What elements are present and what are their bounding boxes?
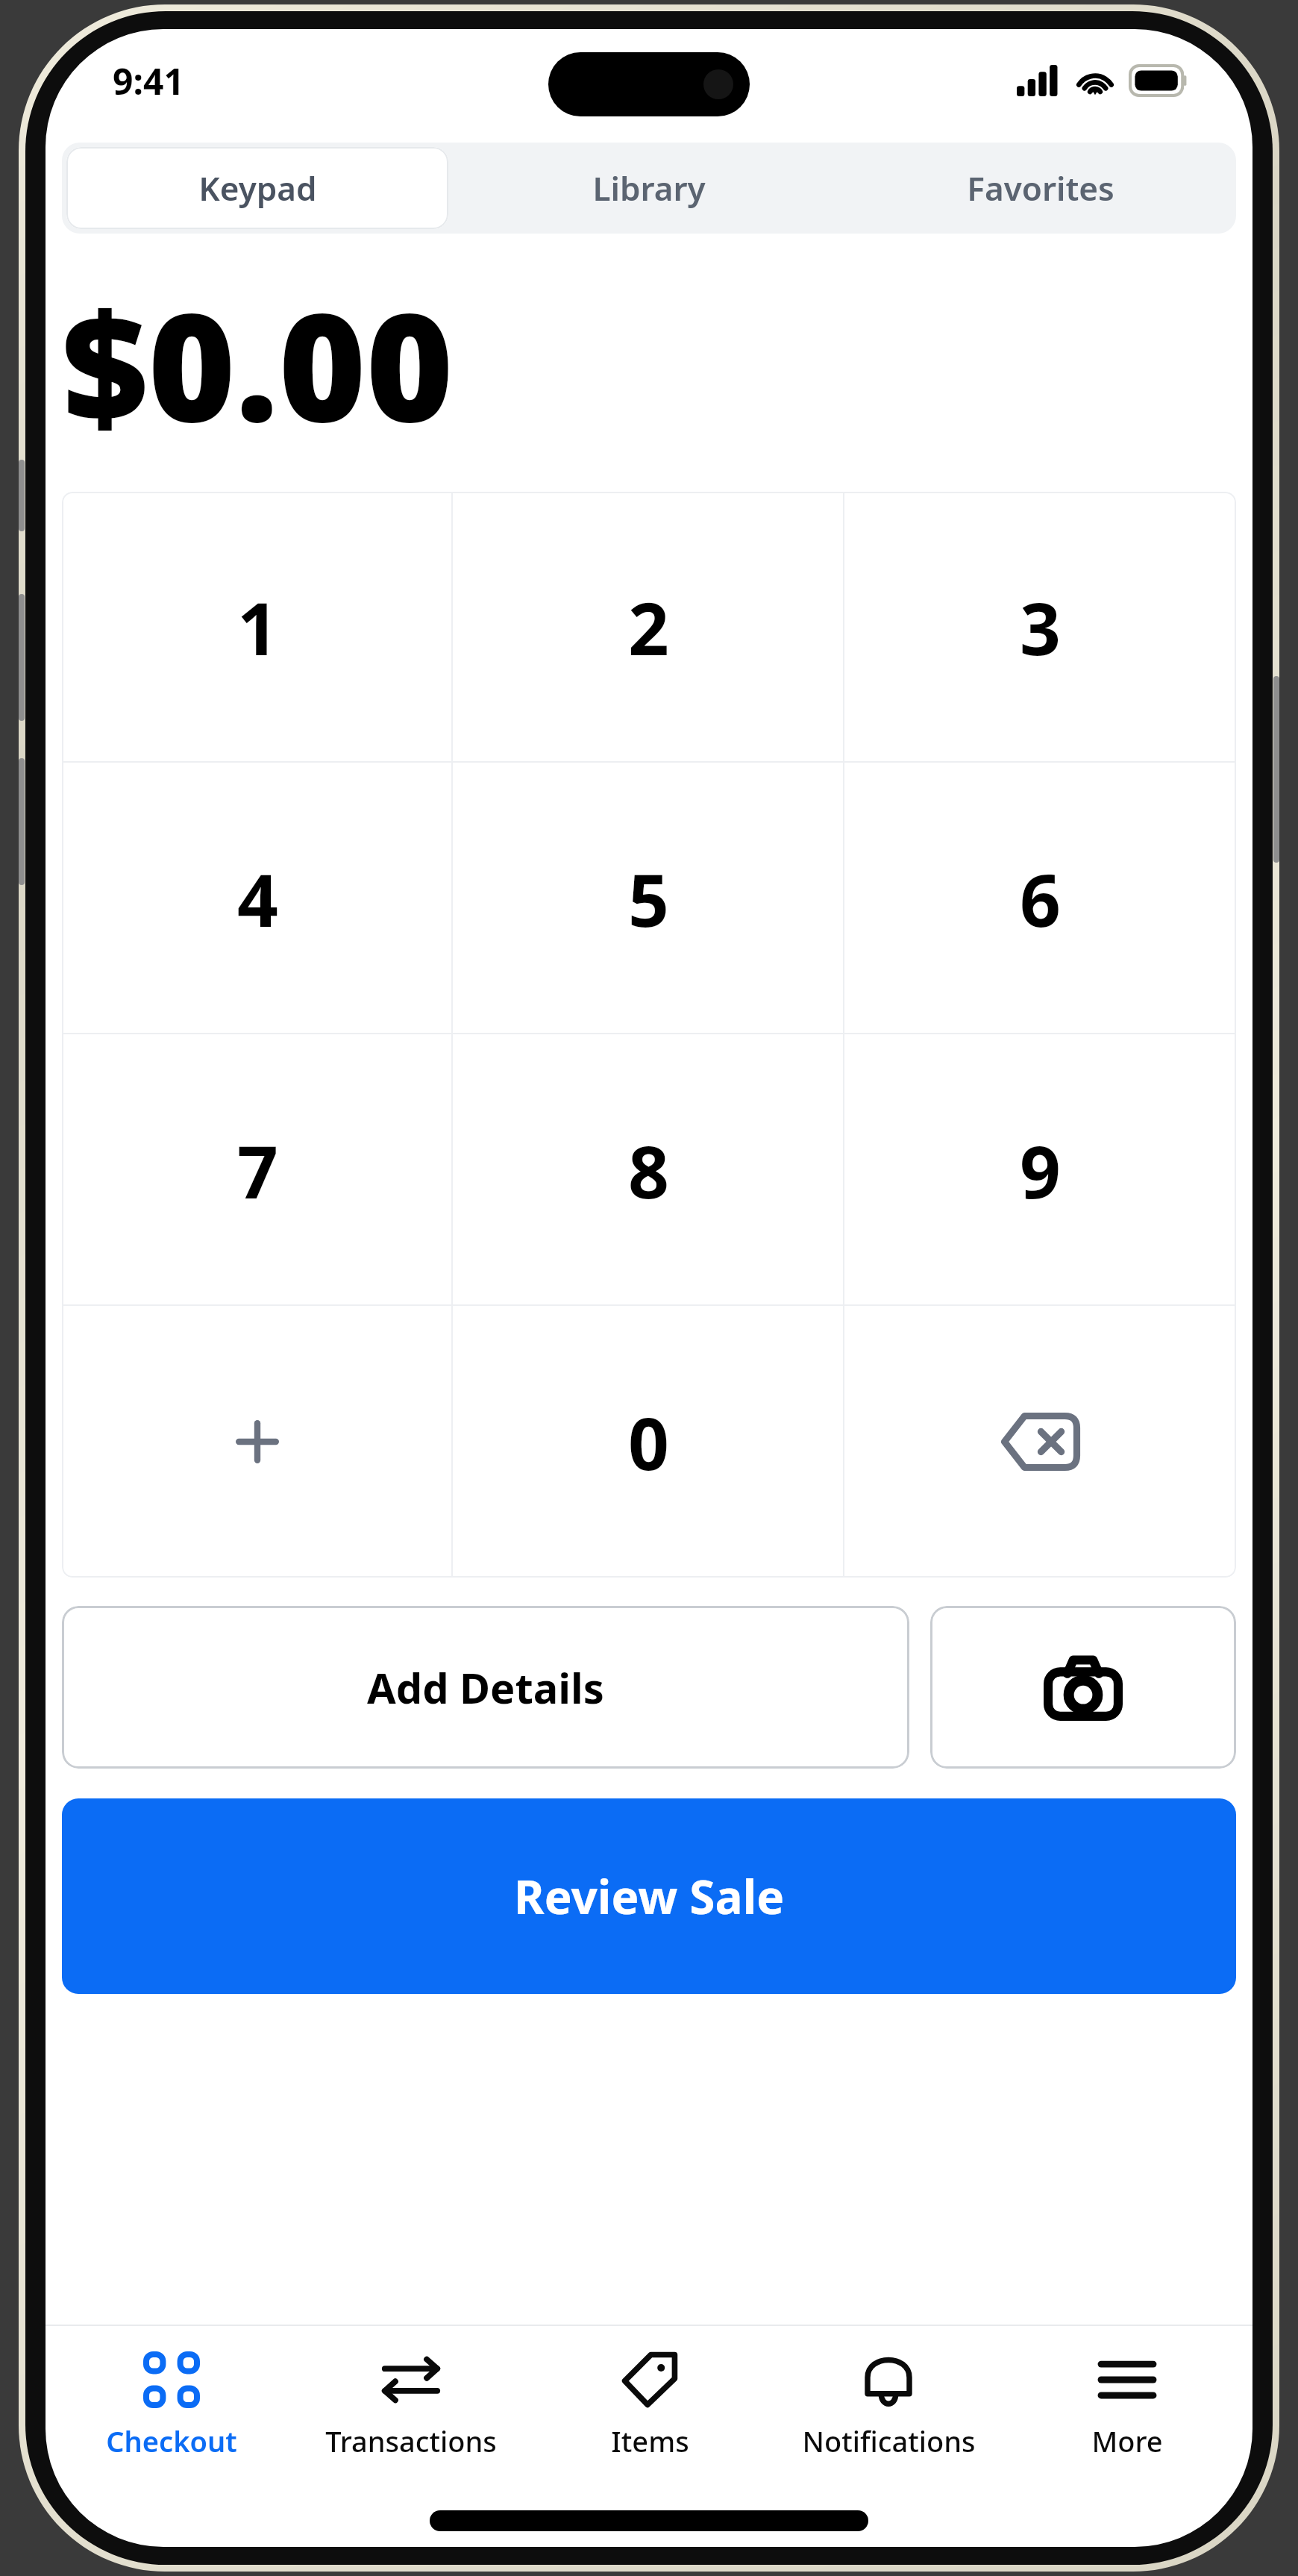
- button[interactable]: 0: [453, 1306, 844, 1578]
- button[interactable]: Library: [453, 143, 844, 234]
- button[interactable]: Favorites: [844, 143, 1236, 234]
- button[interactable]: Backspace: [844, 1306, 1236, 1578]
- staticText: Items: [611, 2422, 689, 2460]
- staticText: Library: [592, 166, 706, 210]
- button[interactable]: 3: [844, 492, 1236, 763]
- button[interactable]: Items: [530, 2326, 769, 2483]
- staticText: 9: [1020, 1122, 1061, 1219]
- staticText: 8: [628, 1122, 669, 1219]
- button[interactable]: Add: [62, 1306, 453, 1578]
- button[interactable]: Checkout: [51, 2326, 291, 2483]
- button[interactable]: Add Details: [62, 1606, 909, 1769]
- button[interactable]: Transactions: [291, 2326, 530, 2483]
- button[interactable]: Keypad: [66, 147, 448, 229]
- staticText: $0.00: [62, 262, 454, 465]
- button[interactable]: 7: [62, 1034, 453, 1306]
- staticText: 3: [1020, 578, 1061, 676]
- staticText: More: [1091, 2422, 1163, 2460]
- button[interactable]: 6: [844, 763, 1236, 1034]
- button[interactable]: 8: [453, 1034, 844, 1306]
- button[interactable]: Review Sale: [62, 1798, 1236, 1994]
- button[interactable]: 2: [453, 492, 844, 763]
- staticText: 1: [237, 578, 278, 676]
- button[interactable]: Notifications: [769, 2326, 1008, 2483]
- staticText: 2: [628, 578, 669, 676]
- button[interactable]: 9: [844, 1034, 1236, 1306]
- staticText: 4: [237, 850, 278, 948]
- staticText: Keypad: [198, 166, 317, 210]
- staticText: Favorites: [967, 166, 1114, 210]
- button[interactable]: More: [1008, 2326, 1247, 2483]
- button[interactable]: Take photo: [930, 1606, 1236, 1769]
- staticText: Checkout: [106, 2422, 237, 2460]
- staticText: Add Details: [367, 1659, 604, 1716]
- button[interactable]: 5: [453, 763, 844, 1034]
- staticText: 7: [237, 1122, 278, 1219]
- button[interactable]: 4: [62, 763, 453, 1034]
- staticText: Transactions: [325, 2422, 497, 2460]
- staticText: 6: [1020, 850, 1061, 948]
- staticText: Notifications: [802, 2422, 976, 2460]
- button[interactable]: 1: [62, 492, 453, 763]
- staticText: 0: [628, 1393, 669, 1491]
- staticText: 9:41: [113, 57, 184, 105]
- staticText: Review Sale: [514, 1865, 785, 1928]
- staticText: 5: [628, 850, 669, 948]
